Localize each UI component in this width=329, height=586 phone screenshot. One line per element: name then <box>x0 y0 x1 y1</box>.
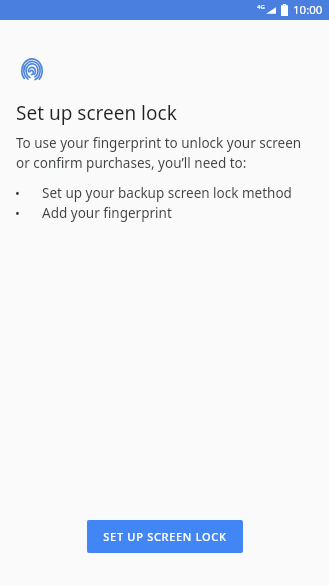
staticText: 10:00 <box>293 2 323 18</box>
staticText: • <box>15 184 42 202</box>
staticText: SET UP SCREEN LOCK <box>103 529 227 544</box>
staticText: To use your fingerprint to unlock your s… <box>16 134 307 172</box>
other: Fingerprint <box>21 56 43 83</box>
staticText: 4G <box>257 3 265 11</box>
button[interactable]: SET UP SCREEN LOCK <box>87 520 243 553</box>
staticText: Set up your backup screen lock method <box>42 184 292 202</box>
staticText: Add your fingerprint <box>42 204 172 222</box>
staticText: • <box>15 204 42 222</box>
staticText: Set up screen lock <box>16 100 177 126</box>
